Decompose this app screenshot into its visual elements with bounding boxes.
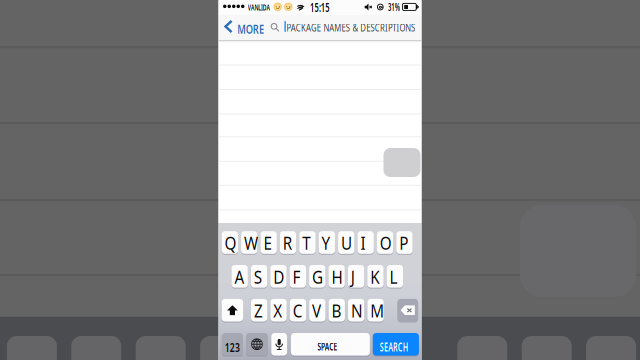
button[interactable]: F: [290, 264, 306, 288]
button[interactable]: SPACE: [291, 332, 370, 356]
staticText: N: [351, 299, 364, 322]
button[interactable]: J: [348, 264, 364, 288]
staticText: SPACE: [317, 339, 349, 353]
staticText: VANLIDA: [248, 1, 288, 13]
staticText: PACKAGE NAMES & DESCRIPTIONS: [286, 20, 464, 35]
button[interactable]: Dictation: [271, 332, 287, 356]
staticText: H: [331, 265, 344, 288]
button[interactable]: O: [377, 231, 393, 254]
staticText: J: [351, 265, 356, 288]
button[interactable]: Q: [222, 231, 238, 254]
staticText: T: [302, 232, 312, 255]
staticText: F: [293, 265, 302, 288]
staticText: V: [312, 299, 322, 322]
button[interactable]: W: [241, 231, 257, 254]
staticText: Y: [322, 232, 332, 255]
button[interactable]: M: [367, 298, 384, 322]
button[interactable]: Numbers and symbols: [222, 332, 243, 356]
button[interactable]: H: [328, 264, 345, 288]
staticText: M: [370, 299, 386, 322]
staticText: K: [370, 265, 381, 288]
staticText: R: [283, 232, 294, 255]
button[interactable]: N: [348, 298, 364, 322]
staticText: MORE: [237, 20, 275, 37]
staticText: D: [273, 265, 286, 288]
button[interactable]: SEARCH: [373, 332, 419, 356]
button[interactable]: E: [260, 231, 277, 254]
button[interactable]: X: [270, 298, 287, 322]
button[interactable]: S: [251, 264, 267, 288]
staticText: SEARCH: [380, 339, 427, 355]
staticText: E: [263, 232, 273, 255]
button[interactable]: K: [367, 264, 384, 288]
staticText: 15:15: [310, 0, 341, 15]
button[interactable]: D: [270, 264, 287, 288]
button[interactable]: MORE: [218, 15, 266, 41]
button[interactable]: A: [231, 264, 248, 288]
staticText: S: [254, 265, 264, 288]
button[interactable]: L: [387, 264, 403, 288]
staticText: W: [244, 232, 260, 255]
button[interactable]: Delete: [397, 298, 418, 322]
staticText: O: [380, 232, 394, 255]
button[interactable]: U: [338, 231, 354, 254]
button[interactable]: T: [299, 231, 316, 254]
button[interactable]: C: [290, 298, 306, 322]
staticText: L: [390, 265, 399, 288]
staticText: I: [360, 232, 366, 255]
staticText: P: [399, 232, 409, 255]
button[interactable]: Next keyboard: [246, 332, 268, 356]
button[interactable]: I: [357, 231, 374, 254]
button[interactable]: Z: [251, 298, 267, 322]
button[interactable]: B: [329, 298, 345, 322]
button[interactable]: Shift: [222, 298, 243, 322]
button[interactable]: G: [309, 264, 325, 288]
staticText: 123: [225, 339, 246, 355]
button[interactable]: PACKAGE NAMES & DESCRIPTIONS: [270, 15, 421, 41]
staticText: X: [273, 299, 283, 322]
staticText: B: [331, 299, 342, 322]
staticText: Z: [254, 299, 264, 322]
button[interactable]: Y: [319, 231, 335, 254]
staticText: 31%: [388, 0, 409, 14]
button[interactable]: P: [396, 231, 413, 254]
staticText: U: [341, 232, 354, 255]
button[interactable]: R: [280, 231, 296, 254]
staticText: Q: [225, 232, 239, 255]
staticText: A: [234, 265, 245, 288]
staticText: G: [312, 265, 325, 288]
button[interactable]: V: [309, 298, 325, 322]
staticText: C: [293, 299, 304, 322]
